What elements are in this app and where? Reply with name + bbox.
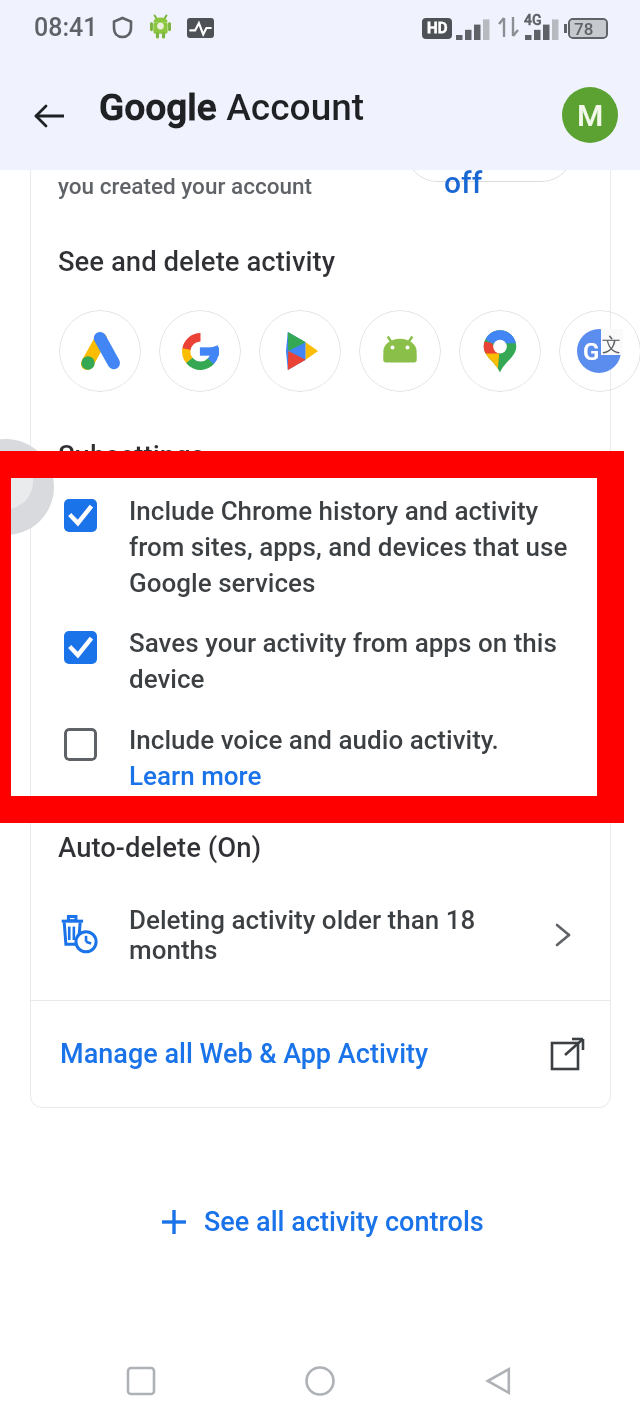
button[interactable]: Deleting activity older than 18 <box>30 880 611 990</box>
button[interactable]: Home <box>282 1343 358 1419</box>
staticText: Account <box>217 86 365 129</box>
staticText: Manage all Web & App Activity <box>60 1038 429 1070</box>
staticText: G <box>583 338 600 366</box>
staticText: Deleting activity older than 18 <box>129 905 476 935</box>
staticText: See all activity controls <box>204 1206 484 1238</box>
staticText: months <box>129 935 218 965</box>
staticText: Auto-delete (On) <box>58 831 262 863</box>
staticText: off <box>444 170 483 200</box>
button[interactable] <box>359 310 441 392</box>
button[interactable]: G <box>559 310 640 392</box>
staticText: Learn more <box>129 761 262 791</box>
staticText: Saves your activity from apps on this <box>129 628 557 658</box>
staticText: you created your account <box>58 173 313 199</box>
button[interactable] <box>30 486 611 620</box>
staticText: 文 <box>602 333 621 357</box>
button[interactable]: Account <box>562 87 618 143</box>
button[interactable] <box>30 715 611 813</box>
staticText: Include voice and audio activity. <box>129 725 499 755</box>
button[interactable] <box>459 310 541 392</box>
button[interactable]: Back <box>461 1343 537 1419</box>
staticText: See and delete activity <box>58 245 336 277</box>
button[interactable] <box>406 170 573 182</box>
button[interactable] <box>159 310 241 392</box>
staticText: Google <box>99 86 217 129</box>
staticText: from sites, apps, and devices that use <box>129 532 568 562</box>
button[interactable] <box>259 310 341 392</box>
staticText: Subsettings <box>58 439 205 471</box>
button[interactable]: Recent apps <box>103 1343 179 1419</box>
staticText: device <box>129 664 205 694</box>
staticText: 08:41 <box>34 13 98 42</box>
staticText: M <box>577 98 604 133</box>
button[interactable]: See all activity controls <box>160 1194 484 1250</box>
staticText: HD <box>427 19 448 37</box>
staticText: 4G <box>524 12 542 28</box>
staticText: 78 <box>574 19 594 39</box>
button[interactable]: Back <box>22 88 78 144</box>
button[interactable] <box>30 618 611 716</box>
button[interactable]: Manage all Web & App Activity <box>30 1001 611 1107</box>
staticText: Include Chrome history and activity <box>129 496 539 526</box>
button[interactable] <box>59 310 141 392</box>
staticText: Google services <box>129 568 316 598</box>
